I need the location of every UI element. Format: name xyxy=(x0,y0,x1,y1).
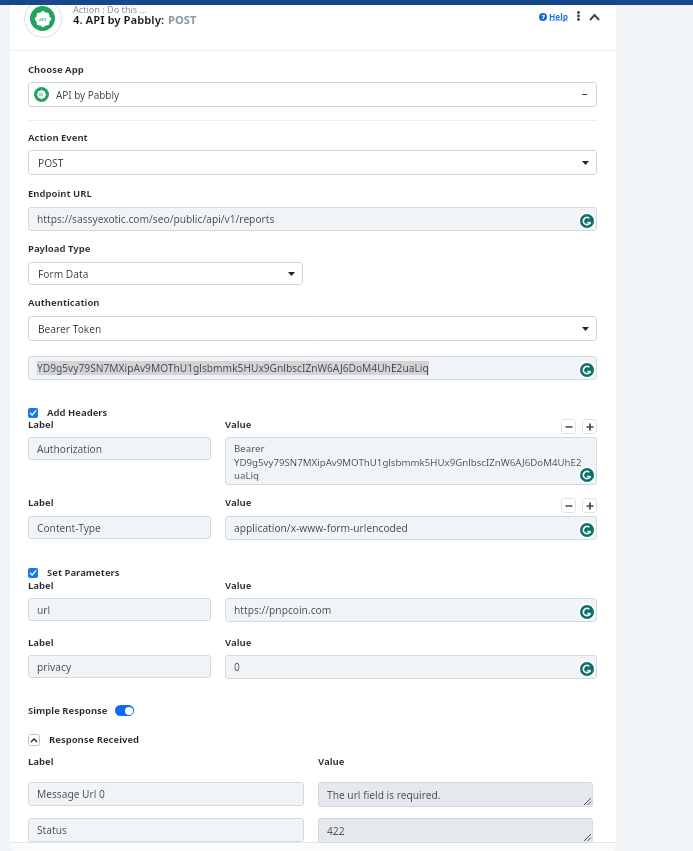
button[interactable]: The url field is required. xyxy=(318,782,593,807)
staticText: Value xyxy=(225,636,252,649)
staticText: Content-Type xyxy=(37,521,101,535)
button[interactable]: Status xyxy=(28,818,304,842)
button[interactable]: Set Parameters xyxy=(28,566,120,579)
button[interactable]: Grammarly xyxy=(580,662,594,676)
button[interactable]: Bearer YD9g5vy79SN7MXipAv9MOThU1glsbmmk5… xyxy=(225,437,597,485)
button[interactable]: Form Data xyxy=(28,262,303,285)
button[interactable]: Add row xyxy=(582,498,597,513)
button[interactable]: Collapse step xyxy=(586,9,602,25)
staticText: application/x-www-form-urlencoded xyxy=(234,521,408,535)
button[interactable]: POST xyxy=(28,150,597,175)
staticText: API by Pabbly xyxy=(56,88,120,101)
staticText: https://sassyexotic.com/seo/public/api/v… xyxy=(37,212,275,226)
staticText: POST xyxy=(38,156,64,170)
button[interactable]: More options xyxy=(572,10,584,22)
staticText: Value xyxy=(225,579,252,592)
staticText: 0 xyxy=(234,660,240,674)
button[interactable]: Remove row xyxy=(561,498,576,513)
button[interactable]: Bearer Token xyxy=(28,316,597,341)
button[interactable]: Grammarly xyxy=(580,605,594,619)
staticText: API xyxy=(39,93,44,96)
staticText: POST xyxy=(168,12,197,27)
staticText: 4. API by Pabbly: xyxy=(73,12,168,27)
button[interactable]: https://pnpcoin.com xyxy=(225,598,597,622)
button[interactable]: API xyxy=(28,82,597,107)
staticText: Choose App xyxy=(28,63,84,76)
staticText: Add Headers xyxy=(47,406,108,419)
staticText: Label xyxy=(28,496,54,509)
staticText: https://pnpcoin.com xyxy=(234,603,332,617)
staticText: Bearer YD9g5vy79SN7MXipAv9MOThU1glsbmmk5… xyxy=(234,442,582,481)
button[interactable]: Response Received xyxy=(28,733,140,746)
staticText: 422 xyxy=(327,824,345,838)
button[interactable]: 0 xyxy=(225,655,597,679)
staticText: Value xyxy=(318,755,345,768)
button[interactable]: Add Headers xyxy=(28,406,108,419)
staticText: Label xyxy=(28,579,54,592)
staticText: Authorization xyxy=(37,442,103,456)
staticText: ? xyxy=(542,13,545,21)
staticText: Message Url 0 xyxy=(37,787,105,801)
button[interactable]: url xyxy=(28,598,211,621)
button[interactable]: Authorization xyxy=(28,437,211,460)
staticText: Label xyxy=(28,636,54,649)
staticText: Help xyxy=(549,11,569,22)
button[interactable]: Add row xyxy=(582,419,597,434)
staticText: Value xyxy=(225,496,252,509)
staticText: Simple Response xyxy=(28,704,108,717)
staticText: url xyxy=(37,603,51,617)
button[interactable]: Remove row xyxy=(561,419,576,434)
staticText: Label xyxy=(28,418,54,431)
button[interactable]: Grammarly xyxy=(580,468,594,482)
staticText: Value xyxy=(225,418,252,431)
button[interactable]: Simple Response xyxy=(28,704,134,717)
staticText: Endpoint URL xyxy=(28,187,92,200)
staticText: The url field is required. xyxy=(327,788,441,802)
staticText: Payload Type xyxy=(28,242,91,255)
button[interactable]: Message Url 0 xyxy=(28,782,304,806)
staticText: Form Data xyxy=(38,267,89,281)
staticText: Status xyxy=(37,823,67,837)
staticText: Action : Do this ... xyxy=(73,3,147,15)
button[interactable]: 422 xyxy=(318,818,593,843)
button[interactable]: Grammarly xyxy=(580,214,594,228)
button[interactable]: privacy xyxy=(28,655,211,678)
button[interactable]: ? xyxy=(539,11,569,22)
button[interactable]: https://sassyexotic.com/seo/public/api/v… xyxy=(28,207,597,231)
button[interactable]: Grammarly xyxy=(580,363,594,377)
staticText: Bearer Token xyxy=(38,322,102,336)
staticText: Action Event xyxy=(28,131,88,144)
staticText: Label xyxy=(28,755,54,768)
button[interactable]: application/x-www-form-urlencoded xyxy=(225,516,597,540)
staticText: Authentication xyxy=(28,296,100,309)
staticText: API xyxy=(39,16,47,22)
staticText: Response Received xyxy=(49,733,140,746)
button[interactable]: YD9g5vy79SN7MXipAv9MOThU1glsbmmk5HUx9Gnl… xyxy=(28,356,597,380)
button[interactable]: Grammarly xyxy=(580,523,594,537)
staticText: Set Parameters xyxy=(47,566,120,579)
staticText: YD9g5vy79SN7MXipAv9MOThU1glsbmmk5HUx9Gnl… xyxy=(37,361,429,375)
button[interactable]: Content-Type xyxy=(28,516,211,539)
staticText: privacy xyxy=(37,660,72,674)
